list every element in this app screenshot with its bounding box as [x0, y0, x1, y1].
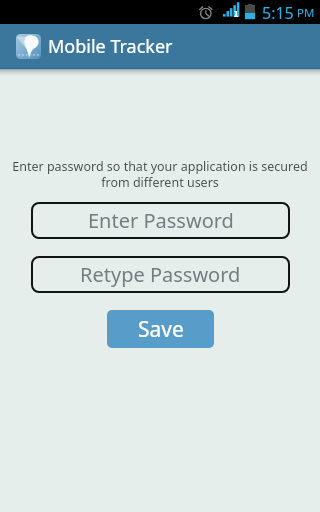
- button[interactable]: Mobile Tracker app icon: [8, 26, 49, 67]
- staticText: Retype Password: [80, 261, 241, 288]
- staticText: Mobile Tracker: [48, 34, 173, 59]
- button[interactable]: Save: [107, 310, 214, 348]
- staticText: Enter Password: [88, 207, 234, 234]
- button[interactable]: Retype Password: [31, 256, 290, 293]
- staticText: Save: [138, 315, 184, 344]
- button[interactable]: Enter Password: [31, 202, 290, 239]
- staticText: Enter password so that your application …: [12, 158, 308, 191]
- staticText: 5:15: [262, 2, 294, 24]
- staticText: PM: [297, 5, 315, 21]
